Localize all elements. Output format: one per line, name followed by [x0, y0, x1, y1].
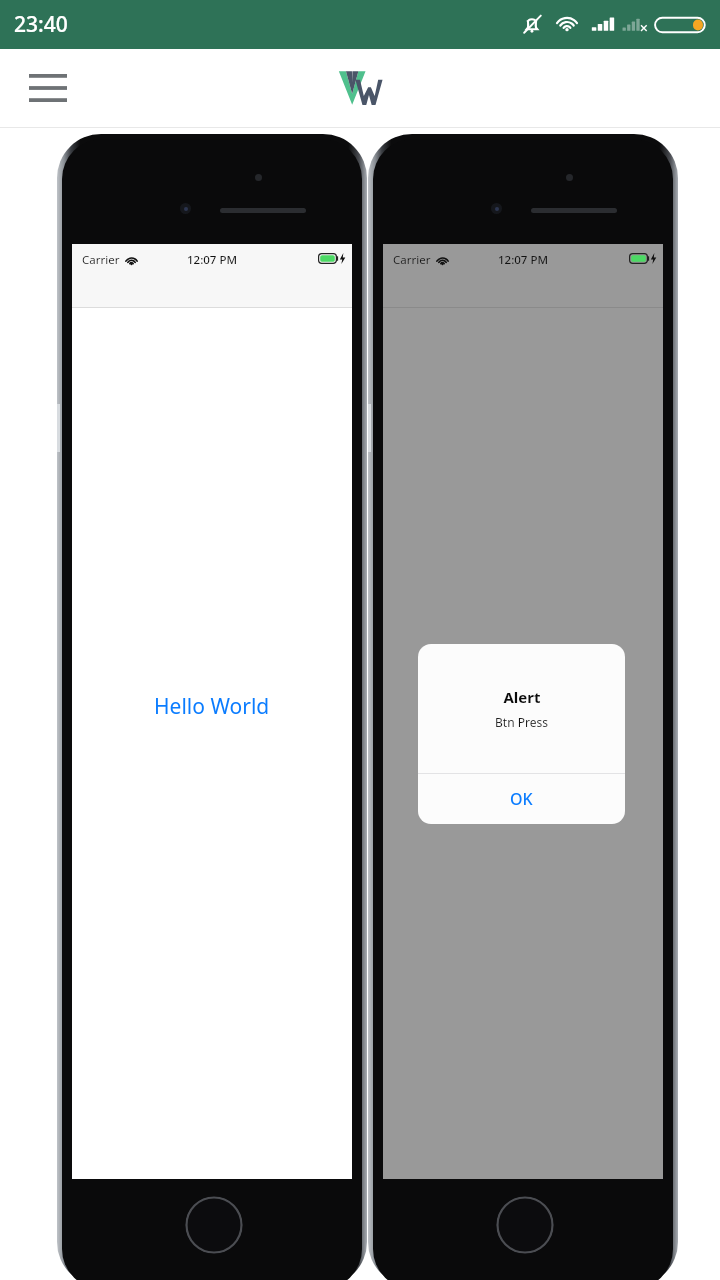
- button[interactable]: OK: [418, 774, 625, 824]
- staticText: 12:07 PM: [498, 252, 549, 268]
- staticText: 23:40: [14, 10, 68, 39]
- button[interactable]: Menu: [14, 54, 82, 122]
- staticText: 12:07 PM: [187, 252, 238, 268]
- staticText: Alert: [503, 687, 541, 707]
- staticText: OK: [510, 788, 533, 810]
- staticText: Carrier: [393, 252, 431, 268]
- staticText: Carrier: [82, 252, 120, 268]
- staticText: Btn Press: [495, 714, 548, 730]
- staticText: Hello World: [154, 692, 270, 721]
